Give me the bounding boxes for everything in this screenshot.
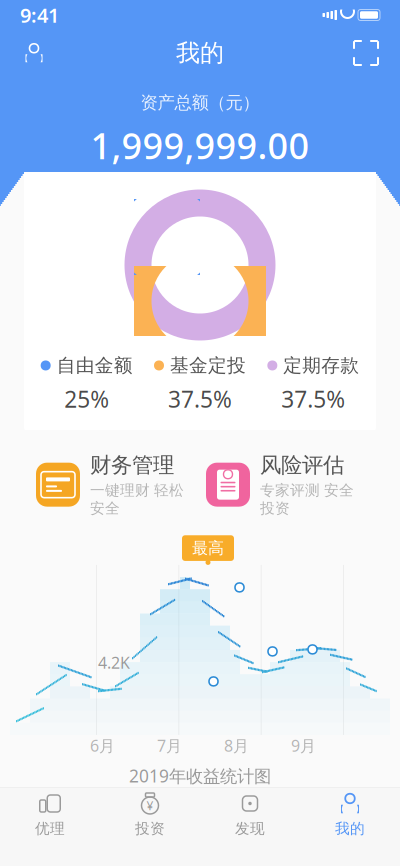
staticText: 财务管理 xyxy=(90,452,174,478)
staticText: 4.2K xyxy=(98,652,130,673)
staticText: 37.5% xyxy=(168,384,232,414)
button[interactable]: 扫一扫 xyxy=(344,31,388,75)
staticText: 25% xyxy=(64,384,109,414)
staticText: 风险评估 xyxy=(260,452,344,478)
button[interactable]: 风险评估 xyxy=(206,448,364,521)
button[interactable]: 财务管理 xyxy=(36,448,194,521)
staticText: 资产总额（元） xyxy=(140,92,259,113)
staticText: 我的 xyxy=(176,38,224,68)
staticText: 我的 xyxy=(335,819,365,837)
staticText: 发现 xyxy=(235,819,265,837)
staticText: 基金定投 xyxy=(170,354,246,377)
staticText: 最高 xyxy=(192,538,224,558)
staticText: 7月 xyxy=(157,735,182,756)
button[interactable]: 我的 xyxy=(300,784,400,843)
button[interactable]: 个人中心 xyxy=(12,31,56,75)
staticText: 优理 xyxy=(35,819,65,837)
staticText: 9月 xyxy=(291,735,316,756)
staticText: 自由金额 xyxy=(57,354,133,377)
staticText: 2019年收益统计图 xyxy=(129,764,271,787)
button[interactable]: ¥ xyxy=(100,784,200,843)
staticText: 投资 xyxy=(135,819,165,837)
button[interactable]: 发现 xyxy=(200,784,300,843)
button[interactable]: 优理 xyxy=(0,784,100,843)
staticText: 定期存款 xyxy=(283,354,359,377)
staticText: 9:41 xyxy=(20,2,59,28)
staticText: 1,999,999.00 xyxy=(90,121,309,169)
staticText: 37.5% xyxy=(281,384,345,414)
staticText: 一键理财 轻松安全 xyxy=(90,481,184,517)
staticText: ¥ xyxy=(146,797,153,813)
staticText: 8月 xyxy=(224,735,249,756)
staticText: 6月 xyxy=(90,735,115,756)
staticText: 专家评测 安全投资 xyxy=(260,481,354,517)
